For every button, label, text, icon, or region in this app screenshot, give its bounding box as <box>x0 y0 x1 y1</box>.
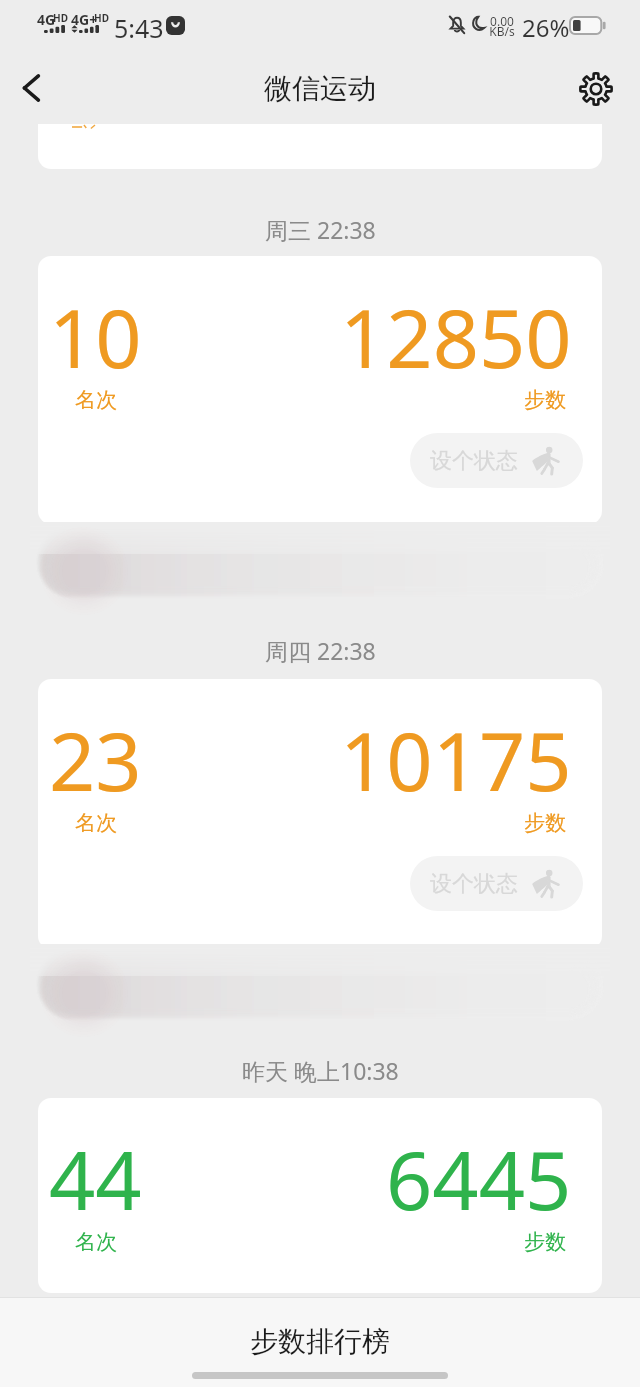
staticText: 设个状态 <box>430 447 518 475</box>
staticText: 4G <box>37 10 56 29</box>
button[interactable]: 设个状态 <box>410 856 583 911</box>
staticText: 23 <box>49 704 142 814</box>
staticText: 步数 <box>524 387 566 413</box>
staticText: 0.00 <box>489 13 515 29</box>
button[interactable]: 23 <box>38 679 602 949</box>
staticText: 5:43 <box>114 11 164 45</box>
button[interactable]: 44 <box>38 1098 602 1293</box>
staticText: 26% <box>522 11 570 44</box>
staticText: KB/s <box>489 23 515 39</box>
button[interactable]: Settings <box>578 59 628 109</box>
staticText: 44 <box>49 1123 142 1233</box>
staticText: 4G+ <box>71 10 98 29</box>
staticText: 昨天 晚上10:38 <box>242 1055 399 1086</box>
staticText: 名次 <box>75 1229 117 1255</box>
staticText: HD <box>53 11 68 25</box>
button[interactable]: 10 <box>38 256 602 524</box>
button[interactable]: 步数排行榜 <box>0 1298 640 1387</box>
staticText: HD <box>94 11 109 25</box>
button[interactable]: 设个状态 <box>410 433 583 488</box>
staticText: 设个状态 <box>430 870 518 898</box>
staticText: 10 <box>49 281 142 391</box>
staticText: 名次 <box>75 387 117 413</box>
staticText: 步数 <box>524 1229 566 1255</box>
staticText: 步数排行榜 <box>250 1324 390 1359</box>
staticText: 名次 <box>75 810 117 836</box>
staticText: 6445 <box>386 1123 572 1233</box>
button[interactable]: Back <box>2 56 58 112</box>
staticText: 周三 22:38 <box>265 214 376 245</box>
staticText: 微信运动 <box>264 71 376 106</box>
staticText: 步数 <box>524 810 566 836</box>
staticText: 10175 <box>340 704 572 814</box>
staticText: 周四 22:38 <box>265 635 376 666</box>
staticText: 12850 <box>340 281 572 391</box>
